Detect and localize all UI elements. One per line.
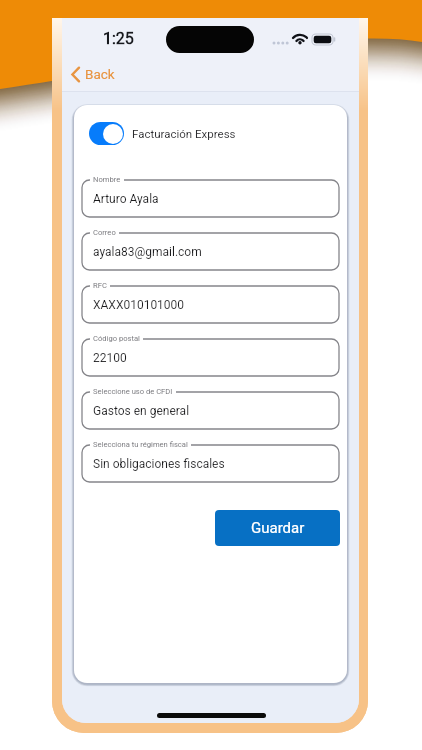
button[interactable]: Correo <box>82 233 339 270</box>
staticText: RFC <box>93 281 107 290</box>
staticText: ayala83@gmail.com <box>93 245 202 259</box>
staticText: Facturación Express <box>132 127 236 140</box>
staticText: Guardar <box>251 519 305 537</box>
staticText: Selecciona tu régimen fiscal <box>93 440 188 449</box>
staticText: Correo <box>93 228 116 237</box>
button[interactable]: Facturación Express <box>89 122 236 145</box>
button[interactable]: Selecciona tu régimen fiscal <box>82 445 339 482</box>
button[interactable]: RFC <box>82 286 339 323</box>
staticText: Arturo Ayala <box>93 192 159 206</box>
staticText: Nombre <box>93 175 121 184</box>
staticText: Seleccione uso de CFDI <box>93 387 173 396</box>
other: Status icons <box>267 29 347 49</box>
staticText: 22100 <box>93 351 127 365</box>
button[interactable]: Guardar <box>215 510 340 546</box>
staticText: Código postal <box>93 334 140 343</box>
staticText: XAXX010101000 <box>93 298 185 312</box>
staticText: Sin obligaciones fiscales <box>93 457 225 471</box>
staticText: Back <box>85 66 115 82</box>
button[interactable]: Back <box>66 59 119 89</box>
staticText: Gastos en general <box>93 404 190 418</box>
button[interactable]: Seleccione uso de CFDI <box>82 392 339 429</box>
staticText: 1:25 <box>103 29 134 48</box>
button[interactable]: Código postal <box>82 339 339 376</box>
button[interactable]: Nombre <box>82 180 339 217</box>
